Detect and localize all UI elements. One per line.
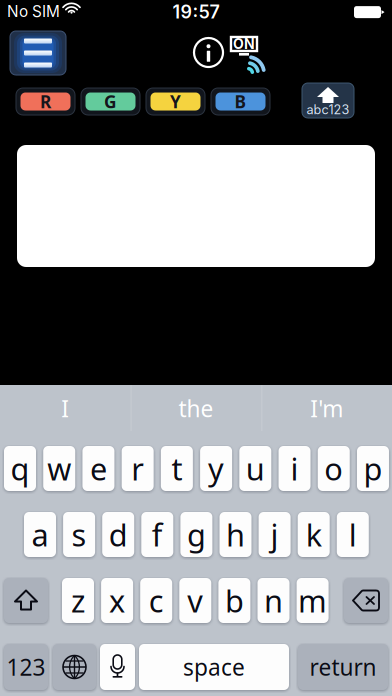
staticText: g: [187, 514, 206, 555]
button[interactable]: R: [16, 88, 75, 115]
staticText: s: [72, 514, 87, 555]
staticText: i: [290, 448, 298, 489]
staticText: r: [131, 448, 144, 489]
staticText: e: [90, 448, 107, 489]
staticText: w: [47, 448, 71, 489]
staticText: v: [187, 580, 203, 621]
button[interactable]: q: [4, 446, 36, 491]
staticText: u: [246, 448, 265, 489]
button[interactable]: j: [259, 512, 291, 557]
button[interactable]: Screen mirroring on: [231, 36, 273, 76]
staticText: n: [264, 580, 283, 621]
staticText: b: [225, 580, 244, 621]
button[interactable]: r: [122, 446, 154, 491]
button[interactable]: c: [140, 578, 172, 623]
button[interactable]: l: [337, 512, 369, 557]
staticText: x: [109, 580, 125, 621]
button[interactable]: z: [62, 578, 94, 623]
button[interactable]: i: [278, 446, 310, 491]
button[interactable]: u: [239, 446, 271, 491]
button[interactable]: 123: [4, 644, 48, 690]
button[interactable]: x: [101, 578, 133, 623]
staticText: 19:57: [172, 1, 219, 23]
button[interactable]: Shift: [4, 578, 48, 623]
staticText: I: [61, 393, 69, 423]
button[interactable]: Y: [146, 88, 205, 115]
button[interactable]: the: [131, 385, 261, 432]
staticText: f: [152, 514, 163, 555]
staticText: k: [306, 514, 322, 555]
staticText: h: [226, 514, 245, 555]
staticText: z: [71, 580, 85, 621]
staticText: B: [234, 90, 246, 113]
button[interactable]: Delete: [344, 578, 388, 623]
button[interactable]: g: [180, 512, 212, 557]
button[interactable]: t: [161, 446, 193, 491]
staticText: j: [271, 514, 279, 555]
button[interactable]: o: [318, 446, 350, 491]
staticText: q: [10, 448, 29, 489]
button[interactable]: Next keyboard: [53, 644, 96, 690]
staticText: d: [109, 514, 128, 555]
button[interactable]: B: [211, 88, 270, 115]
button[interactable]: Info: [193, 37, 224, 68]
button[interactable]: h: [219, 512, 251, 557]
staticText: I'm: [310, 393, 343, 423]
button[interactable]: f: [141, 512, 173, 557]
staticText: G: [104, 90, 117, 113]
button[interactable]: s: [63, 512, 95, 557]
button[interactable]: a: [24, 512, 56, 557]
button[interactable]: e: [82, 446, 114, 491]
staticText: a: [31, 514, 48, 555]
staticText: Y: [170, 90, 181, 113]
staticText: ON: [233, 35, 255, 52]
staticText: 123: [6, 652, 45, 682]
staticText: R: [40, 90, 51, 113]
staticText: No SIM: [7, 2, 60, 21]
staticText: l: [349, 514, 357, 555]
button[interactable]: y: [200, 446, 232, 491]
staticText: c: [149, 580, 164, 621]
staticText: the: [178, 393, 213, 423]
staticText: p: [363, 448, 382, 489]
staticText: y: [208, 448, 224, 489]
staticText: abc123: [306, 102, 349, 117]
button[interactable]: I'm: [261, 385, 392, 432]
button[interactable]: return: [298, 644, 388, 690]
staticText: return: [309, 652, 376, 682]
button[interactable]: n: [257, 578, 289, 623]
button[interactable]: I: [0, 385, 131, 432]
button[interactable]: abc123: [302, 83, 354, 118]
button[interactable]: b: [218, 578, 250, 623]
button[interactable]: G: [81, 88, 140, 115]
button[interactable]: v: [179, 578, 211, 623]
button[interactable]: w: [43, 446, 75, 491]
button[interactable]: Menu: [10, 31, 66, 75]
button[interactable]: space: [139, 644, 289, 690]
staticText: t: [171, 448, 182, 489]
staticText: m: [298, 580, 327, 621]
button[interactable]: m: [297, 578, 329, 623]
button[interactable]: Dictation: [100, 644, 135, 690]
staticText: space: [183, 652, 245, 682]
button[interactable]: p: [357, 446, 389, 491]
button[interactable]: d: [102, 512, 134, 557]
button[interactable]: k: [298, 512, 330, 557]
staticText: o: [324, 448, 343, 489]
